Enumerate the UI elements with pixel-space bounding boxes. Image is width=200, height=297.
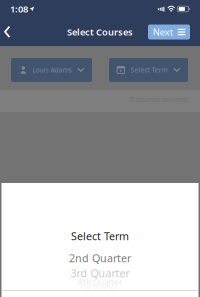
staticText: 1st Quarter xyxy=(82,283,118,292)
staticText: 0 courses selected xyxy=(130,95,188,104)
button[interactable]: Back xyxy=(0,20,19,44)
staticText: Select Term xyxy=(71,229,129,243)
staticText: 4th Quarter xyxy=(78,277,122,288)
staticText: Louis Adams xyxy=(33,66,72,74)
staticText: 1:08 xyxy=(10,3,28,15)
staticText: Select Courses xyxy=(67,26,133,38)
staticText: 3rd Quarter xyxy=(70,266,129,280)
button[interactable]: Next xyxy=(148,24,190,39)
staticText: 2nd Quarter xyxy=(69,251,131,265)
button[interactable]: Select Term xyxy=(109,58,188,82)
staticText: Next xyxy=(153,26,173,38)
staticText: Select Term xyxy=(131,66,168,74)
button[interactable]: Louis Adams xyxy=(11,58,92,82)
